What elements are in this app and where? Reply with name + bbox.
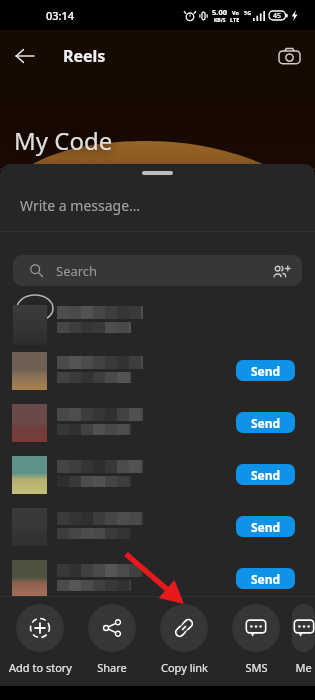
button[interactable]: Back <box>0 31 50 81</box>
staticText: Send <box>251 519 281 535</box>
staticText: Write a message… <box>20 196 141 215</box>
button[interactable]: Send <box>0 500 315 552</box>
button[interactable]: Send <box>236 516 295 537</box>
staticText: 5G <box>244 9 252 16</box>
button[interactable]: Send <box>236 464 295 485</box>
staticText: KB/S <box>214 17 226 24</box>
staticText: Send <box>251 571 281 587</box>
staticText: Copy link <box>161 660 208 675</box>
button[interactable]: Send <box>0 552 315 597</box>
staticText: Send <box>251 363 281 379</box>
staticText: 45 <box>273 11 282 21</box>
staticText: Search <box>56 262 98 280</box>
staticText: 5.00 <box>212 7 227 17</box>
button[interactable]: Send <box>0 448 315 500</box>
staticText: My Code <box>14 124 113 157</box>
staticText: SMS <box>245 660 268 675</box>
button[interactable]: Send <box>236 412 295 433</box>
staticText: Add to story <box>9 660 72 675</box>
button[interactable]: Share <box>76 597 148 675</box>
button[interactable]: Copy link <box>148 597 220 675</box>
button[interactable]: Camera <box>264 31 314 81</box>
staticText: Send <box>251 467 281 483</box>
button[interactable]: Write a message… <box>0 179 315 231</box>
button[interactable] <box>0 292 315 344</box>
button[interactable]: Send <box>0 396 315 448</box>
staticText: LTE <box>230 16 240 23</box>
button[interactable]: Add to story <box>4 597 76 675</box>
staticText: Send <box>251 415 281 431</box>
button[interactable]: Send <box>236 568 295 589</box>
button[interactable]: SMS <box>220 597 292 675</box>
button[interactable]: Search <box>13 255 302 286</box>
staticText: Me <box>295 660 312 675</box>
staticText: 03:14 <box>46 8 75 23</box>
staticText: Share <box>97 660 127 675</box>
staticText: Vo <box>232 9 239 16</box>
other: Add people <box>270 260 292 282</box>
button[interactable]: Me <box>292 597 315 675</box>
staticText: Reels <box>63 45 106 67</box>
button[interactable]: Send <box>0 344 315 396</box>
button[interactable]: Send <box>236 360 295 381</box>
